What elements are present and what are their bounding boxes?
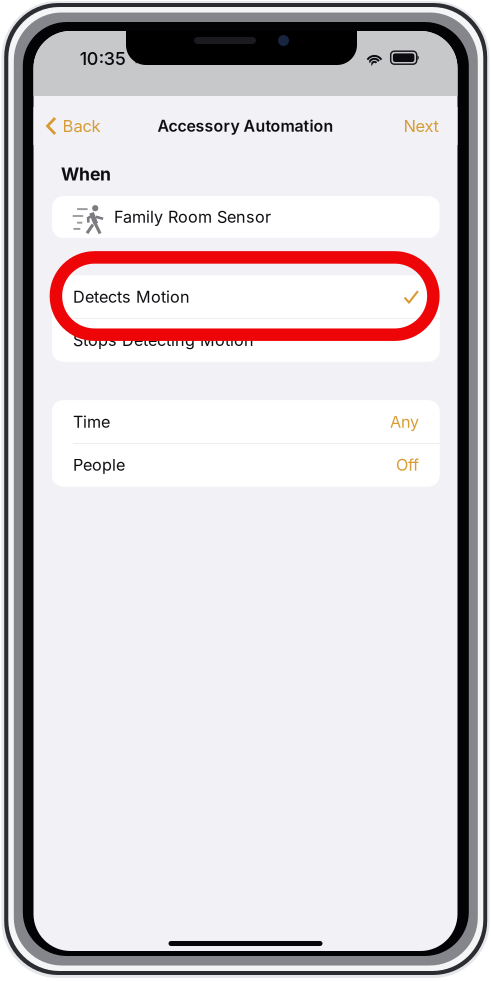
- staticText: Time: [73, 412, 110, 431]
- staticText: Next: [403, 116, 438, 136]
- staticText: Stops Detecting Motion: [73, 330, 254, 350]
- staticText: Off: [396, 455, 419, 475]
- staticText: When: [61, 163, 111, 185]
- staticText: People: [73, 455, 125, 475]
- staticText: Back: [62, 116, 100, 136]
- button[interactable]: Time: [52, 400, 439, 443]
- button[interactable]: People: [52, 444, 439, 486]
- staticText: Any: [390, 412, 419, 431]
- button[interactable]: Detects Motion: [52, 275, 439, 318]
- button[interactable]: Next: [33, 107, 103, 145]
- staticText: 10:35: [80, 48, 126, 69]
- button[interactable]: Stops Detecting Motion: [52, 319, 439, 361]
- button[interactable]: Back: [33, 107, 111, 145]
- staticText: Detects Motion: [73, 287, 190, 307]
- staticText: Accessory Automation: [157, 116, 333, 136]
- button[interactable]: Family Room Sensor: [52, 196, 439, 238]
- staticText: Family Room Sensor: [114, 207, 271, 227]
